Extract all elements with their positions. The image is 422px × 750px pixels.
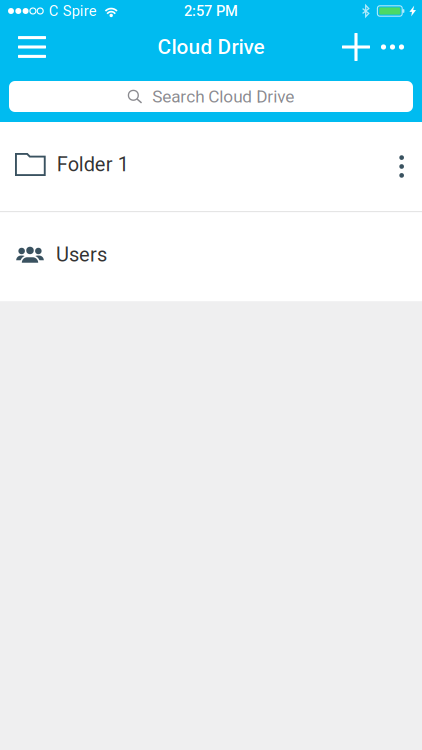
- button[interactable]: More options: [375, 22, 422, 72]
- button[interactable]: Users: [0, 212, 422, 301]
- staticText: Search Cloud Drive: [152, 86, 294, 107]
- button[interactable]: Folder 1: [0, 122, 422, 211]
- staticText: Users: [56, 243, 107, 266]
- button[interactable]: Search Cloud Drive: [0, 72, 422, 122]
- staticText: 2:57 PM: [184, 2, 238, 20]
- staticText: Cloud Drive: [157, 35, 264, 59]
- button[interactable]: Add: [328, 22, 375, 72]
- button[interactable]: Menu: [0, 22, 60, 72]
- staticText: Folder 1: [57, 153, 129, 176]
- staticText: C Spire: [49, 2, 97, 20]
